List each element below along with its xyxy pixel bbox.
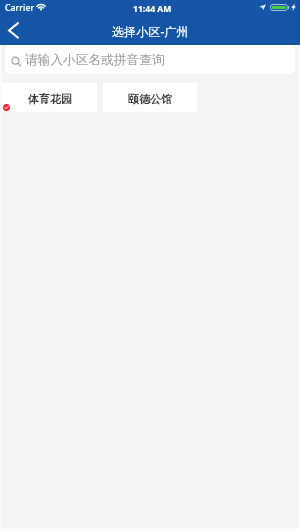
staticText: 体育花园: [28, 92, 72, 106]
staticText: 选择小区-广州: [112, 23, 189, 40]
button[interactable]: Back: [4, 19, 23, 42]
button[interactable]: 颐德公馆: [103, 83, 197, 112]
staticText: Carrier: [5, 2, 35, 14]
staticText: 颐德公馆: [128, 92, 172, 106]
staticText: 请输入小区名或拼音查询: [25, 52, 165, 68]
button[interactable]: 请输入小区名或拼音查询: [5, 45, 295, 74]
button[interactable]: 体育花园: [2, 83, 97, 112]
staticText: 11:44 AM: [133, 3, 172, 15]
